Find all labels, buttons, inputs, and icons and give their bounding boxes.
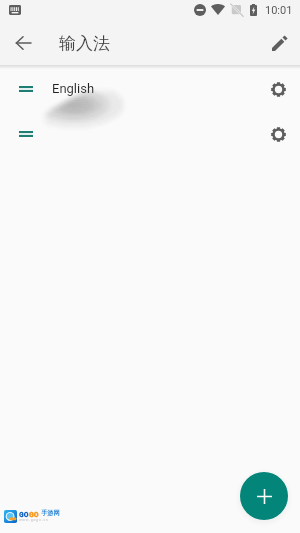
- staticText: 手游网: [41, 509, 60, 517]
- staticText: GO: [19, 510, 29, 519]
- staticText: English: [52, 81, 95, 96]
- button[interactable]: Settings: [263, 74, 293, 104]
- button[interactable]: Settings: [0, 112, 300, 156]
- button[interactable]: Edit: [264, 28, 294, 58]
- staticText: 10:01: [265, 4, 293, 17]
- staticText: GO: [29, 510, 39, 519]
- button[interactable]: Back: [8, 28, 38, 58]
- staticText: 输入法: [59, 33, 110, 54]
- button[interactable]: English: [0, 67, 300, 111]
- staticText: w w w . g o g o . c n: [19, 518, 48, 522]
- button[interactable]: Add input method: [240, 472, 288, 520]
- button[interactable]: Settings: [263, 119, 293, 149]
